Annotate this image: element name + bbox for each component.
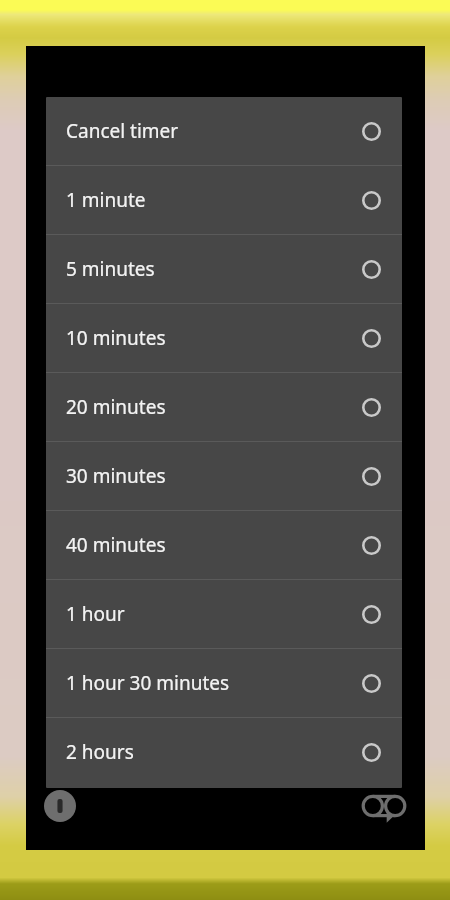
staticText: 2 hours [66,739,360,765]
staticText: 1 minute [66,187,360,213]
button[interactable]: 20 minutes [46,373,402,441]
button[interactable]: Repeat [356,790,412,822]
staticText: 10 minutes [66,325,360,351]
staticText: 40 minutes [66,532,360,558]
button[interactable]: Pause timer [44,790,76,822]
button[interactable]: 2 hours [46,718,402,786]
staticText: 20 minutes [66,394,360,420]
staticText: 1 hour [66,601,360,627]
button[interactable]: 1 hour [46,580,402,648]
staticText: Cancel timer [66,118,360,144]
staticText: 30 minutes [66,463,360,489]
staticText: 5 minutes [66,256,360,282]
button[interactable]: 30 minutes [46,442,402,510]
button[interactable]: 10 minutes [46,304,402,372]
button[interactable]: 1 minute [46,166,402,234]
staticText: 1 hour 30 minutes [66,670,360,696]
button[interactable]: 40 minutes [46,511,402,579]
button[interactable]: 5 minutes [46,235,402,303]
button[interactable]: Cancel timer [46,97,402,165]
button[interactable]: 1 hour 30 minutes [46,649,402,717]
